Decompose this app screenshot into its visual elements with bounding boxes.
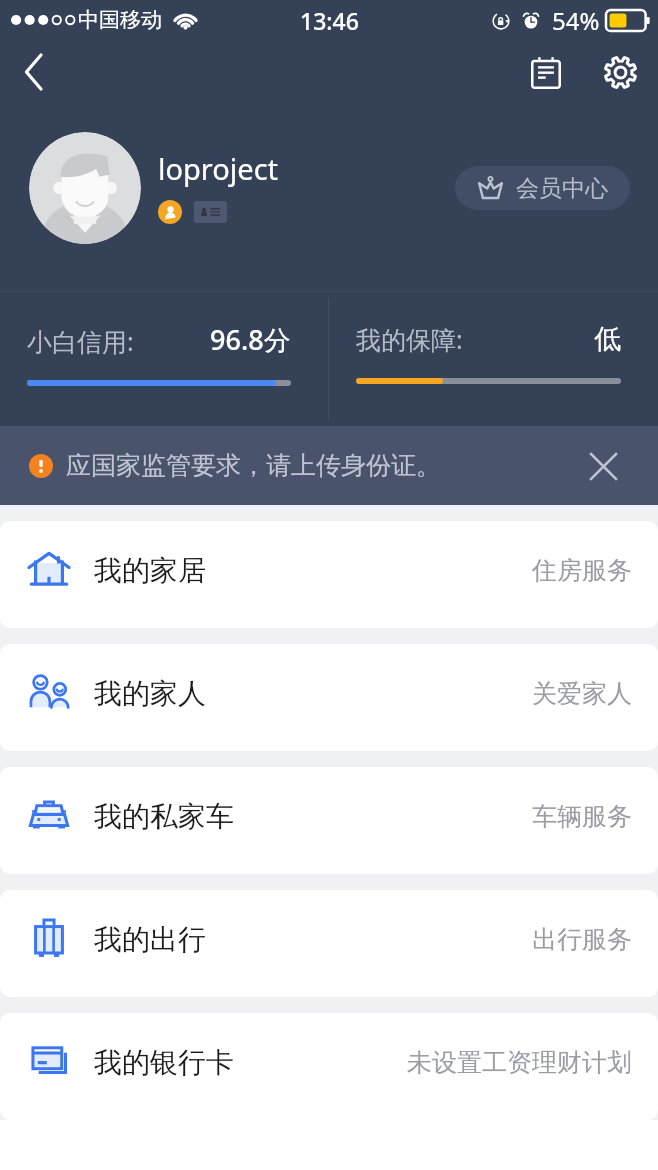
button[interactable]: Close	[581, 444, 625, 488]
staticText: 关爱家人	[532, 678, 632, 709]
staticText: 小白信用:	[27, 324, 134, 358]
button[interactable]: 我的私家车	[0, 767, 658, 874]
button[interactable]: Verified user	[158, 200, 182, 224]
staticText: 96.8分	[210, 321, 291, 358]
button[interactable]	[29, 132, 141, 244]
staticText: 我的保障:	[356, 322, 463, 356]
staticText: 应国家监管要求，请上传身份证。	[66, 450, 441, 481]
button[interactable]: Settings	[594, 46, 646, 98]
button[interactable]: 应国家监管要求，请上传身份证。	[0, 426, 658, 505]
staticText: 未设置工资理财计划	[407, 1047, 632, 1078]
staticText: 中国移动	[78, 7, 162, 33]
staticText: 我的出行	[94, 922, 206, 957]
staticText: 13:46	[300, 5, 359, 36]
staticText: 我的家人	[94, 676, 206, 711]
staticText: 我的家居	[94, 553, 206, 588]
staticText: loproject	[158, 149, 279, 188]
button[interactable]: 我的出行	[0, 890, 658, 997]
staticText: 54%	[552, 4, 600, 37]
staticText: 会员中心	[516, 174, 608, 203]
button[interactable]: 我的家居	[0, 521, 658, 628]
staticText: 低	[594, 322, 621, 356]
button[interactable]: 会员中心	[455, 166, 630, 210]
button[interactable]: 我的保障:	[329, 292, 658, 426]
button[interactable]: 小白信用:	[0, 292, 328, 426]
staticText: 车辆服务	[532, 801, 632, 832]
staticText: 出行服务	[532, 924, 632, 955]
button[interactable]: Back	[10, 48, 58, 96]
staticText: 我的银行卡	[94, 1045, 234, 1080]
staticText: 住房服务	[532, 555, 632, 586]
staticText: 我的私家车	[94, 799, 234, 834]
button[interactable]: 我的银行卡	[0, 1013, 658, 1120]
button[interactable]: Orders	[520, 46, 572, 98]
button[interactable]: ID card	[194, 201, 227, 223]
button[interactable]: 我的家人	[0, 644, 658, 751]
